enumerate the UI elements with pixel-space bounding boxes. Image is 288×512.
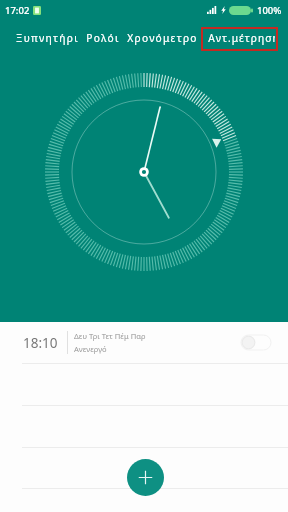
button[interactable]: Add alarm — [127, 459, 164, 496]
staticText: Δευ Τρι Τετ Πέμ Παρ — [74, 331, 146, 341]
button[interactable]: 18:10 — [0, 322, 288, 363]
button[interactable]: Χρονόμετρο — [123, 27, 201, 51]
button[interactable]: Ξυπνητήρι — [12, 27, 82, 51]
staticText: 18:10 — [23, 334, 58, 352]
button[interactable]: Ρολόι — [82, 27, 123, 51]
staticText: Αντ.μέτρηση — [208, 31, 275, 45]
button[interactable]: Alarm toggle — [241, 335, 271, 350]
staticText: 100% — [257, 4, 282, 17]
staticText: 17:02 — [5, 4, 30, 17]
staticText: Ξυπνητήρι — [16, 31, 79, 45]
staticText: Ανενεργό — [74, 344, 107, 354]
button[interactable]: Αντ.μέτρηση — [203, 29, 276, 49]
staticText: Ρολόι — [86, 31, 120, 45]
staticText: Χρονόμετρο — [127, 31, 198, 45]
